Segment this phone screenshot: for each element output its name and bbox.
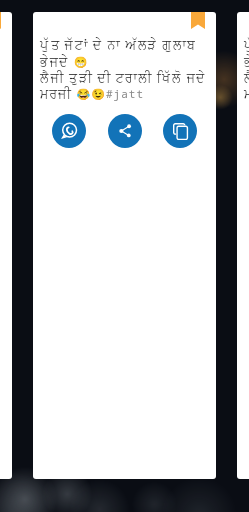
staticText: ਪੁੱਤ ਜੱਟਾਂ ਦੇ ਨਾ ਅੱਲੜੇ ਗੁਲਾਬ ਭੇਜਦੇ 😁 ਲੈਜ… bbox=[244, 36, 249, 101]
button[interactable]: ਪੁੱਤ ਜੱਟਾਂ ਦੇ ਨਾ ਅੱਲੜੇ ਗੁਲਾਬ ਭੇਜਦੇ 😁 ਲੈਜ… bbox=[33, 12, 216, 479]
button[interactable]: Copy bbox=[163, 114, 197, 148]
staticText: ਪੁੱਤ ਜੱਟਾਂ ਦੇ ਨਾ ਅੱਲੜੇ ਗੁਲਾਬ ਭੇਜਦੇ 😁 ਲੈਜ… bbox=[40, 36, 209, 101]
button[interactable]: Share on WhatsApp bbox=[52, 114, 86, 148]
button[interactable]: Share bbox=[108, 114, 142, 148]
